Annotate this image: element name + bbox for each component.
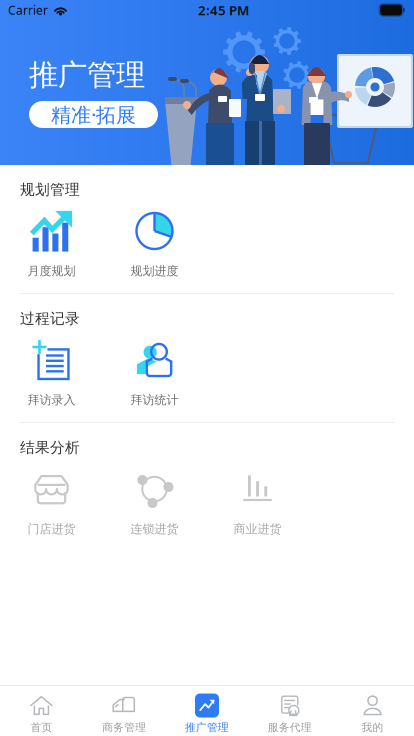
button[interactable]: 拜访录入 bbox=[0, 339, 103, 407]
button[interactable]: 推广管理 bbox=[166, 691, 248, 736]
staticText: 规划进度 bbox=[130, 264, 178, 278]
staticText: 精准·拓展 bbox=[51, 101, 136, 128]
staticText: 服务代理 bbox=[268, 721, 312, 734]
staticText: 月度规划 bbox=[27, 264, 75, 278]
staticText: 拜访统计 bbox=[130, 393, 178, 407]
button[interactable]: 拜访统计 bbox=[103, 339, 206, 407]
staticText: 商业进货 bbox=[233, 522, 281, 536]
button[interactable]: 服务代理 bbox=[248, 691, 331, 736]
button[interactable]: 规划进度 bbox=[103, 210, 206, 278]
staticText: 连锁进货 bbox=[130, 522, 178, 536]
staticText: 我的 bbox=[362, 721, 384, 734]
button[interactable]: 连锁进货 bbox=[103, 468, 206, 536]
staticText: 门店进货 bbox=[27, 522, 75, 536]
staticText: 商务管理 bbox=[102, 721, 146, 734]
staticText: 2:45 PM bbox=[198, 1, 249, 19]
button[interactable]: 月度规划 bbox=[0, 210, 103, 278]
staticText: 推广管理 bbox=[29, 57, 145, 93]
staticText: Carrier bbox=[8, 2, 48, 18]
button[interactable]: 首页 bbox=[0, 691, 83, 736]
button[interactable]: 商业进货 bbox=[206, 468, 309, 536]
staticText: 规划管理 bbox=[20, 180, 80, 198]
staticText: 拜访录入 bbox=[27, 393, 75, 407]
button[interactable]: 门店进货 bbox=[0, 468, 103, 536]
staticText: 结果分析 bbox=[20, 438, 80, 456]
staticText: 推广管理 bbox=[185, 721, 229, 734]
button[interactable]: 我的 bbox=[331, 691, 414, 736]
staticText: 过程记录 bbox=[20, 309, 80, 327]
staticText: 首页 bbox=[30, 721, 52, 734]
button[interactable]: 商务管理 bbox=[83, 691, 166, 736]
